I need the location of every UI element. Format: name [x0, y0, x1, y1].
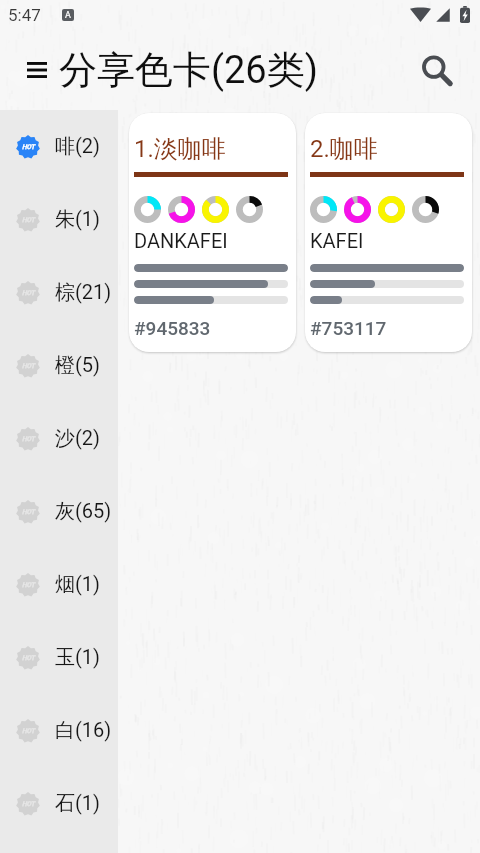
staticText: 橙(5)	[55, 353, 101, 378]
staticText: 1.淡咖啡	[134, 134, 226, 164]
button[interactable]: HOT	[0, 329, 118, 402]
staticText: 白(16)	[55, 718, 112, 743]
staticText: HOT	[22, 362, 35, 370]
staticText: 朱(1)	[55, 207, 101, 232]
staticText: 玉(1)	[55, 645, 101, 670]
staticText: 石(1)	[55, 791, 101, 816]
staticText: DANKAFEI	[134, 229, 228, 252]
staticText: HOT	[22, 581, 35, 589]
staticText: HOT	[22, 654, 35, 662]
staticText: #945833	[134, 317, 211, 339]
button[interactable]: HOT	[0, 694, 118, 767]
staticText: #753117	[310, 317, 387, 339]
button[interactable]: 2.咖啡	[305, 113, 472, 352]
staticText: HOT	[22, 143, 35, 151]
button[interactable]: HOT	[0, 110, 118, 183]
staticText: HOT	[22, 216, 35, 224]
staticText: HOT	[22, 800, 35, 808]
button[interactable]: HOT	[0, 475, 118, 548]
button[interactable]: HOT	[0, 256, 118, 329]
button[interactable]: HOT	[0, 621, 118, 694]
staticText: 烟(1)	[55, 572, 101, 597]
staticText: 2.咖啡	[310, 134, 378, 164]
button[interactable]: Menu	[20, 53, 54, 87]
staticText: 分享色卡(26类)	[59, 46, 318, 94]
staticText: 棕(21)	[55, 280, 112, 305]
button[interactable]: Search	[415, 48, 459, 92]
staticText: KAFEI	[310, 229, 364, 252]
staticText: HOT	[22, 289, 35, 297]
button[interactable]: HOT	[0, 767, 118, 840]
button[interactable]: HOT	[0, 548, 118, 621]
button[interactable]: HOT	[0, 402, 118, 475]
button[interactable]: HOT	[0, 183, 118, 256]
staticText: 5:47	[8, 5, 41, 25]
staticText: 沙(2)	[55, 426, 101, 451]
staticText: HOT	[22, 508, 35, 516]
staticText: A	[65, 10, 71, 21]
staticText: HOT	[22, 727, 35, 735]
button[interactable]: 1.淡咖啡	[129, 113, 296, 352]
staticText: 啡(2)	[55, 134, 101, 159]
staticText: 灰(65)	[55, 499, 112, 524]
staticText: HOT	[22, 435, 35, 443]
